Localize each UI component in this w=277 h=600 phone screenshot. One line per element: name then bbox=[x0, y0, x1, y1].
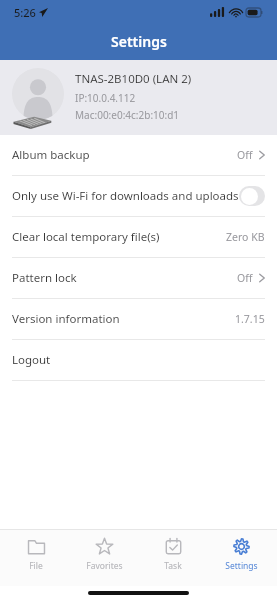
other: Settings bbox=[232, 537, 251, 556]
button[interactable]: File bbox=[4, 535, 68, 572]
staticText: Logout bbox=[12, 352, 51, 368]
staticText: IP:10.0.4.112 bbox=[75, 91, 136, 105]
staticText: Mac:00:e0:4c:2b:10:d1 bbox=[75, 108, 180, 122]
staticText: Version information bbox=[12, 311, 120, 327]
button[interactable]: Album backup bbox=[0, 135, 277, 175]
staticText: Pattern lock bbox=[12, 270, 77, 286]
button[interactable]: Task bbox=[141, 535, 205, 572]
staticText: Off bbox=[237, 271, 253, 285]
button[interactable]: TNAS-2B10D0 (LAN 2) bbox=[0, 60, 277, 135]
staticText: Off bbox=[237, 148, 253, 162]
button[interactable]: Pattern lock bbox=[0, 258, 277, 298]
other: Task bbox=[164, 537, 183, 556]
button[interactable]: Favorites bbox=[72, 535, 136, 572]
staticText: File bbox=[29, 560, 43, 572]
staticText: Zero KB bbox=[226, 230, 265, 244]
other: Favorites bbox=[95, 537, 114, 556]
staticText: Album backup bbox=[12, 147, 90, 163]
button[interactable]: Logout bbox=[0, 340, 277, 380]
other: File bbox=[27, 537, 46, 556]
staticText: Only use Wi-Fi for downloads and uploads bbox=[12, 188, 239, 204]
button[interactable]: Only use Wi-Fi for downloads and uploads bbox=[0, 176, 277, 216]
staticText: Task bbox=[164, 560, 182, 572]
button[interactable]: Version information bbox=[0, 299, 277, 339]
staticText: Settings bbox=[111, 32, 167, 51]
staticText: TNAS-2B10D0 (LAN 2) bbox=[75, 71, 192, 87]
staticText: 5:26 bbox=[14, 5, 36, 20]
button[interactable]: Settings bbox=[209, 535, 273, 572]
button[interactable]: Clear local temporary file(s) bbox=[0, 217, 277, 257]
staticText: Settings bbox=[225, 560, 258, 572]
staticText: Favorites bbox=[86, 560, 123, 572]
staticText: Clear local temporary file(s) bbox=[12, 229, 160, 245]
staticText: 1.7.15 bbox=[235, 312, 265, 326]
